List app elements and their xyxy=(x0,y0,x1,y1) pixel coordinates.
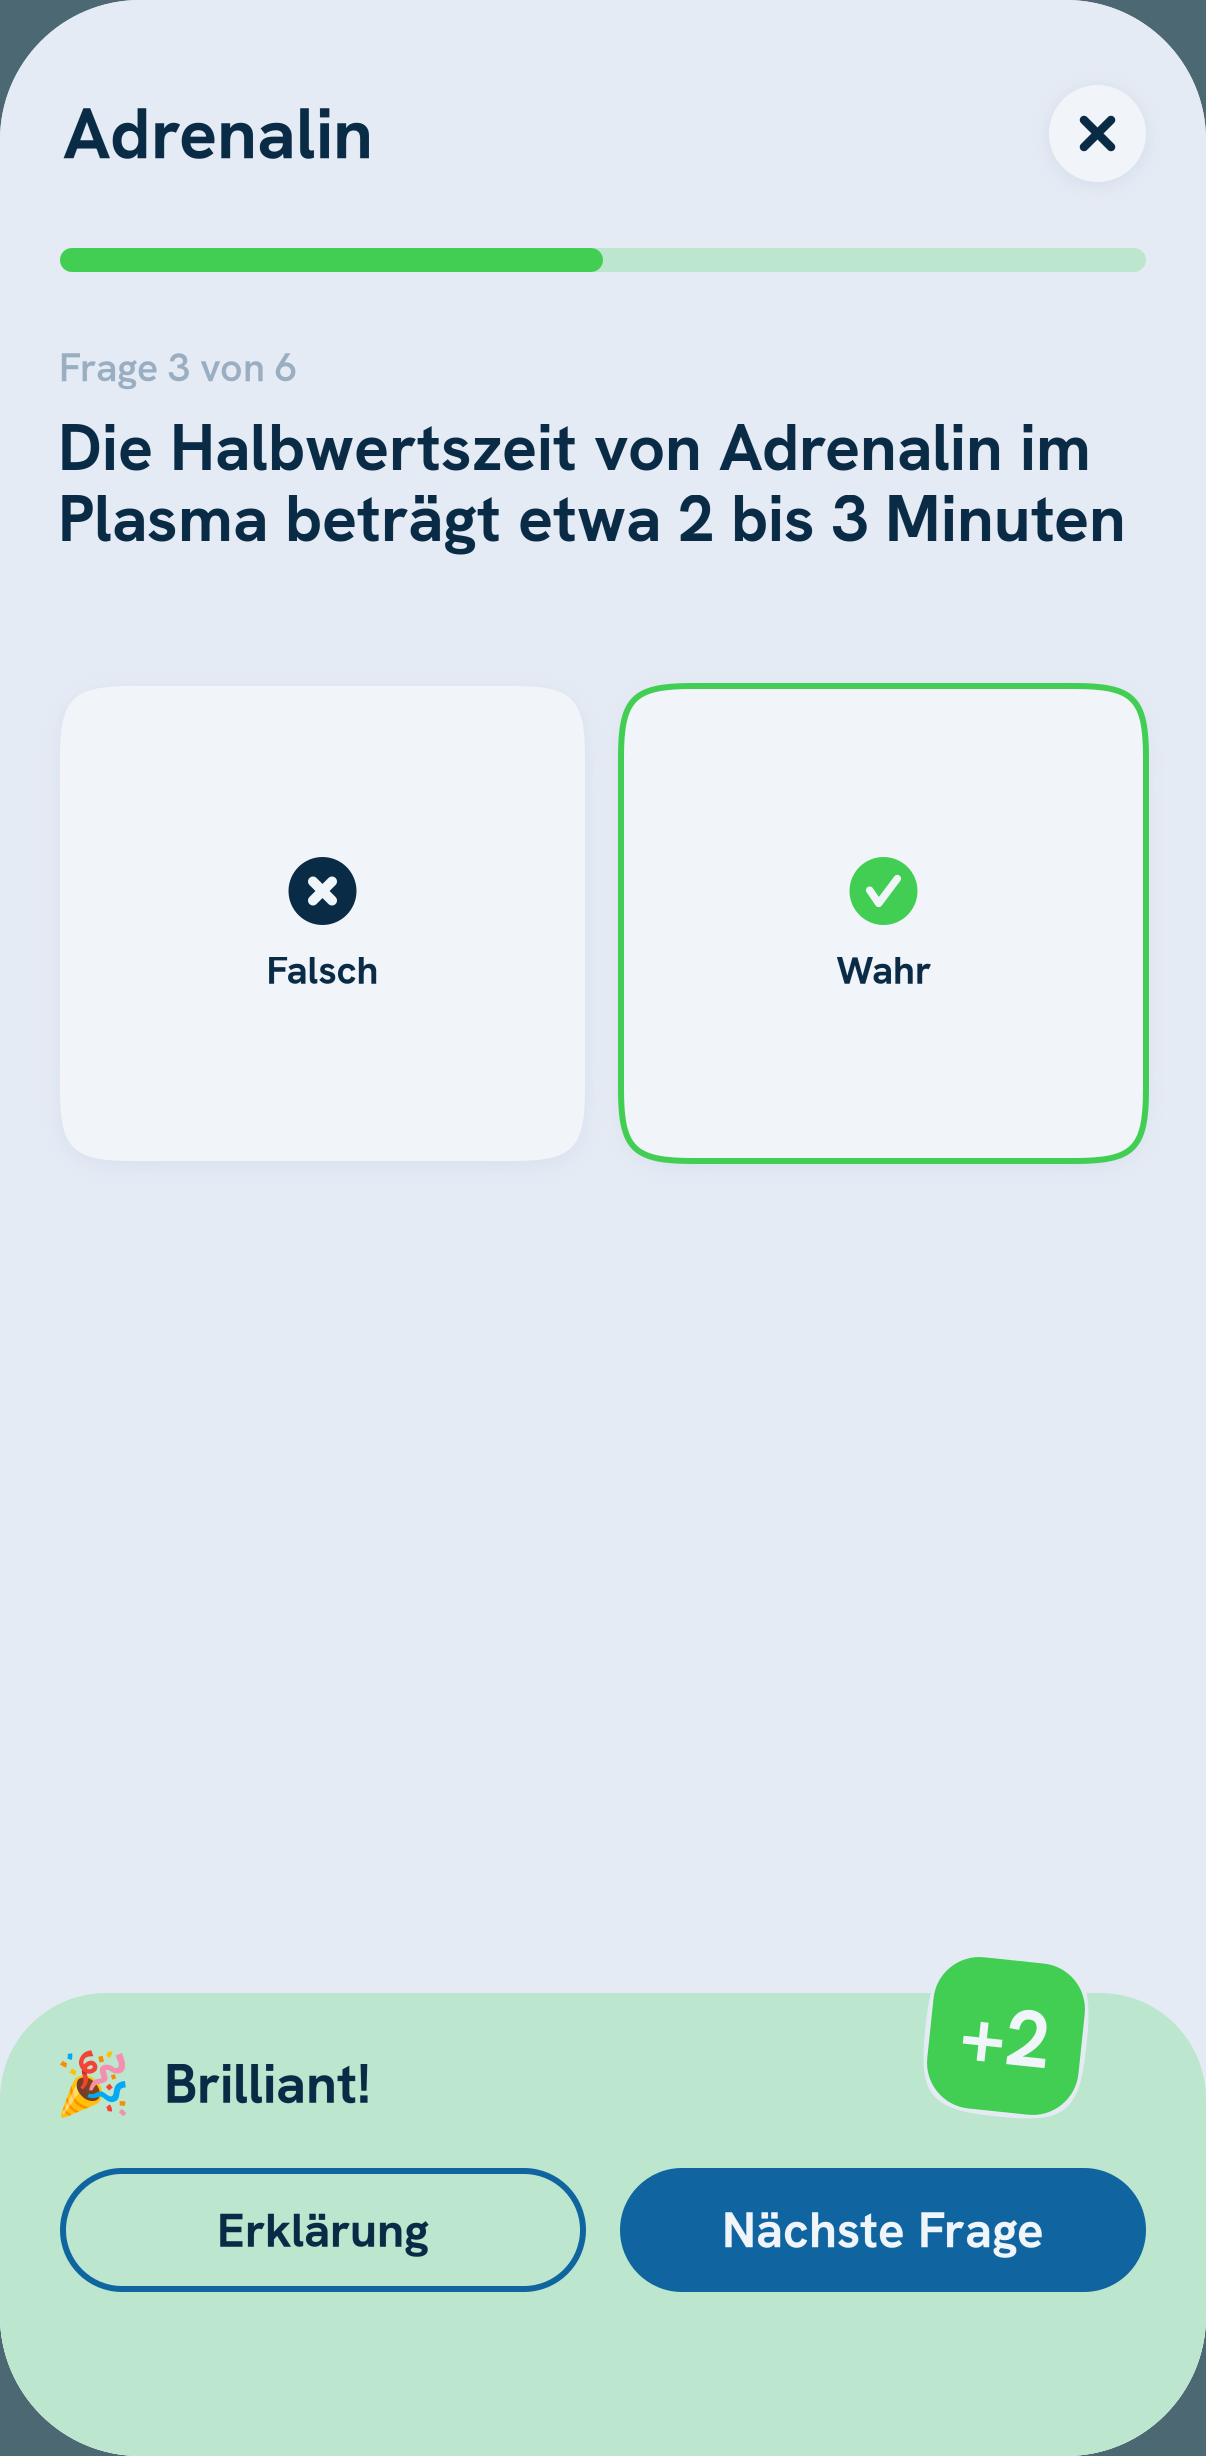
button[interactable]: Schließen xyxy=(1049,85,1146,182)
staticText: Adrenalin xyxy=(63,87,373,180)
staticText: Erklärung xyxy=(217,2199,429,2261)
staticText: Wahr xyxy=(836,945,931,995)
staticText: Die Halbwertszeit von Adrenalin im xyxy=(58,405,1091,490)
staticText: Nächste Frage xyxy=(722,2198,1044,2262)
staticText: Frage 3 von 6 xyxy=(59,342,297,393)
staticText: Plasma beträgt etwa 2 bis 3 Minuten xyxy=(58,476,1126,561)
staticText: 🎉 xyxy=(55,2049,131,2119)
staticText: Falsch xyxy=(266,945,378,995)
button[interactable]: Nächste Frage xyxy=(620,2168,1146,2292)
button[interactable]: Falsch xyxy=(60,686,585,1161)
button[interactable]: Erklärung xyxy=(60,2168,586,2292)
button[interactable]: Wahr xyxy=(621,686,1146,1161)
staticText: Brilliant! xyxy=(164,2048,371,2119)
staticText: +2 xyxy=(961,1984,1051,2088)
